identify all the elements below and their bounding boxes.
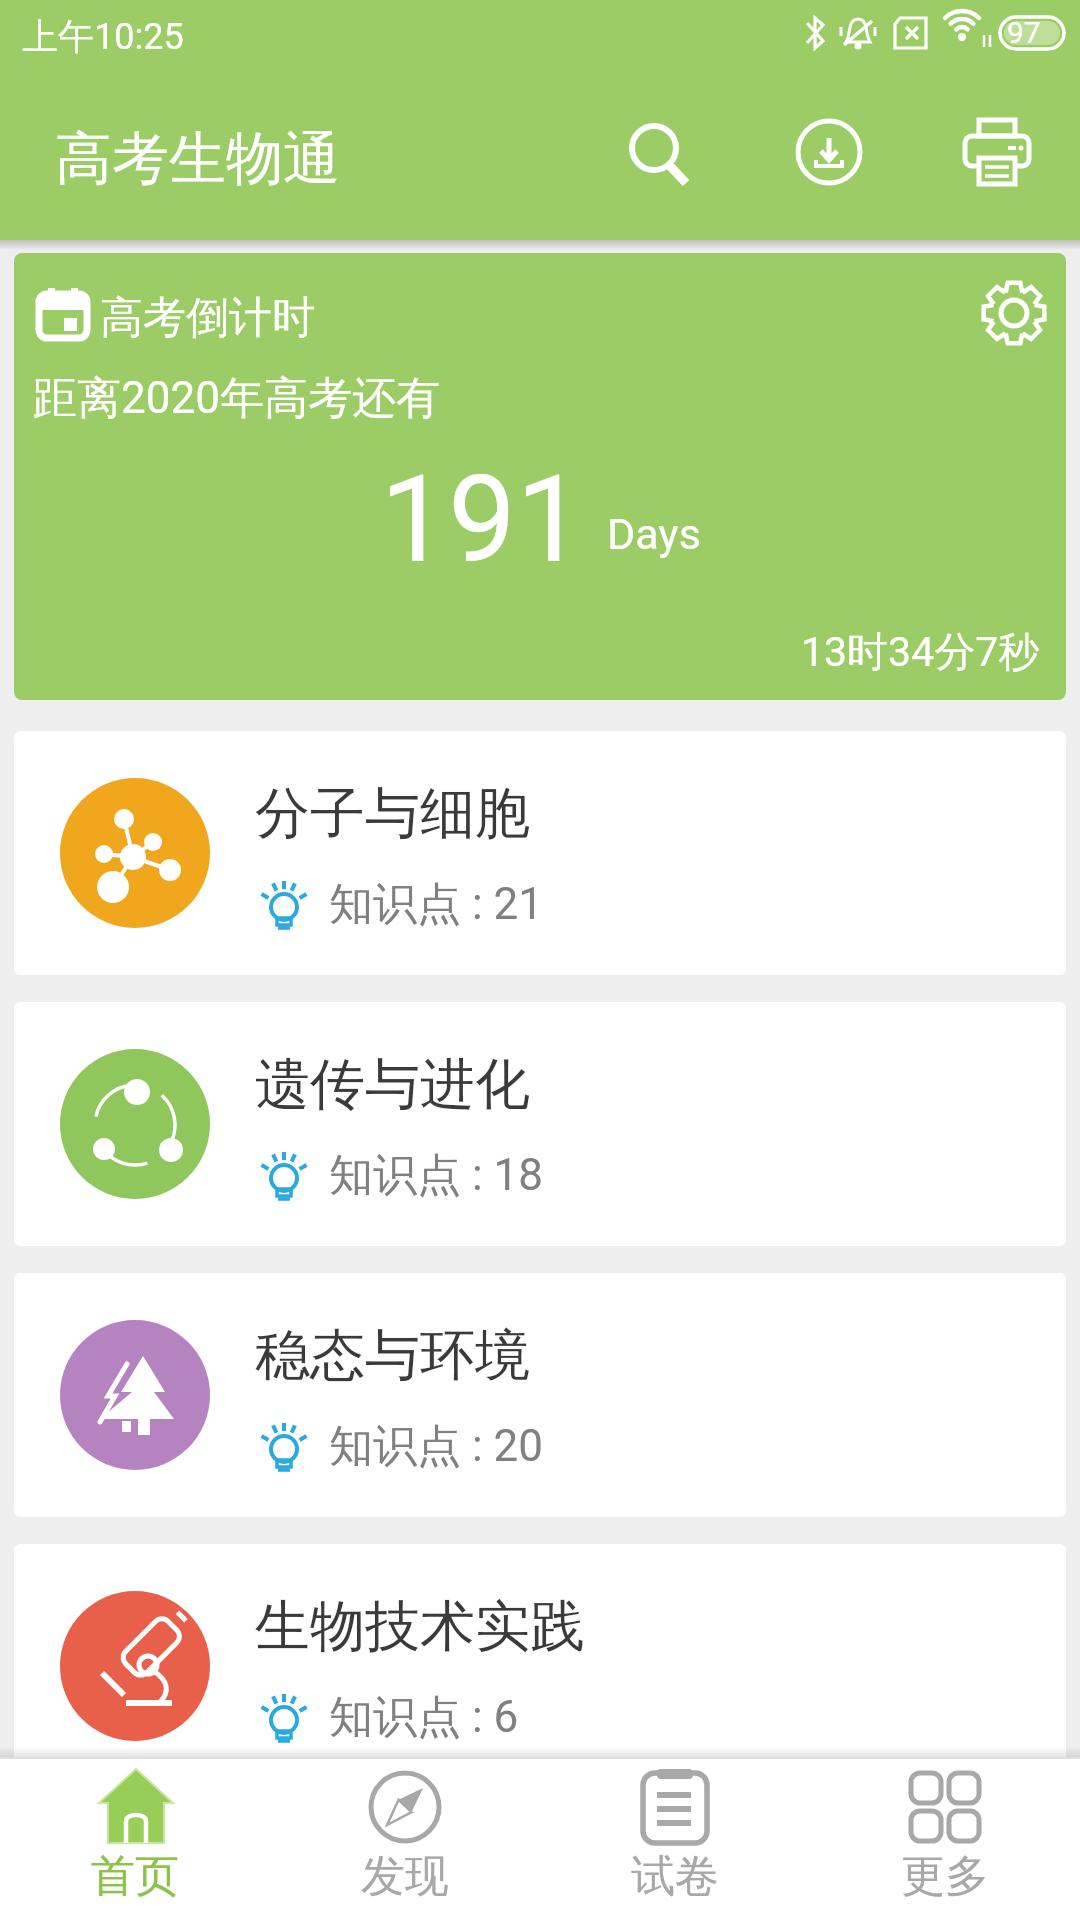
button[interactable] bbox=[612, 108, 702, 198]
staticText: 97 bbox=[1007, 15, 1041, 50]
staticText: 更多 bbox=[901, 1849, 989, 1904]
button[interactable] bbox=[784, 108, 874, 198]
staticText: 发现 bbox=[361, 1849, 449, 1904]
staticText: 生物技术实践 bbox=[255, 1592, 585, 1661]
staticText: 试卷 bbox=[631, 1849, 719, 1904]
button[interactable]: 稳态与环境 bbox=[14, 1273, 1066, 1517]
staticText: 分子与细胞 bbox=[255, 779, 530, 848]
staticText: 13时34分7秒 bbox=[801, 627, 1040, 679]
button[interactable]: 遗传与进化 bbox=[14, 1002, 1066, 1246]
button[interactable]: 发现 bbox=[270, 1757, 540, 1920]
staticText: 稳态与环境 bbox=[255, 1321, 530, 1390]
staticText: 距离2020年高考还有 bbox=[33, 371, 440, 426]
staticText: 上午10:25 bbox=[22, 14, 184, 59]
button[interactable]: 更多 bbox=[810, 1757, 1080, 1920]
staticText: 知识点 : 20 bbox=[329, 1419, 543, 1474]
staticText: 知识点 : 21 bbox=[329, 877, 543, 932]
button[interactable]: 分子与细胞 bbox=[14, 731, 1066, 975]
button[interactable]: 高考倒计时 bbox=[14, 253, 1066, 700]
staticText: Days bbox=[607, 509, 701, 559]
staticText: 首页 bbox=[91, 1849, 179, 1904]
button[interactable] bbox=[977, 276, 1051, 350]
staticText: 遗传与进化 bbox=[255, 1050, 530, 1119]
button[interactable]: 首页 bbox=[0, 1757, 270, 1920]
staticText: 知识点 : 18 bbox=[329, 1148, 543, 1203]
button[interactable] bbox=[952, 108, 1042, 198]
staticText: 知识点 : 6 bbox=[329, 1690, 519, 1745]
staticText: 高考生物通 bbox=[55, 123, 340, 195]
button[interactable]: 生物技术实践 bbox=[14, 1544, 1066, 1788]
staticText: 高考倒计时 bbox=[100, 291, 315, 345]
staticText: 191 bbox=[380, 449, 585, 591]
button[interactable]: 试卷 bbox=[540, 1757, 810, 1920]
